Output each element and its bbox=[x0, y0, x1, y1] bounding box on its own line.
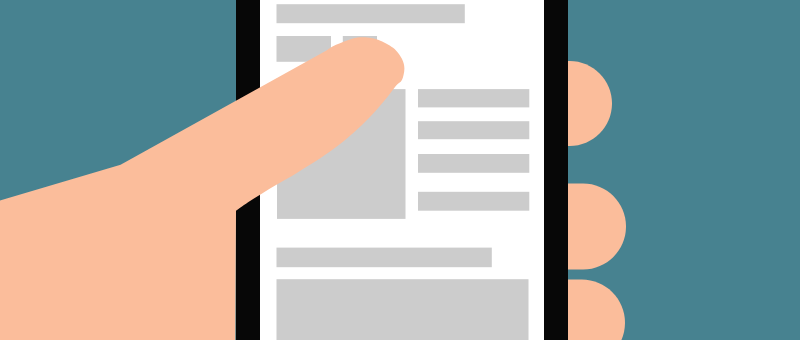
button[interactable]: Section title bbox=[276, 247, 491, 266]
button[interactable]: Category tag bbox=[276, 36, 330, 61]
button[interactable]: Article with thumbnail bbox=[277, 89, 529, 218]
button[interactable]: Secondary tag bbox=[342, 36, 376, 61]
